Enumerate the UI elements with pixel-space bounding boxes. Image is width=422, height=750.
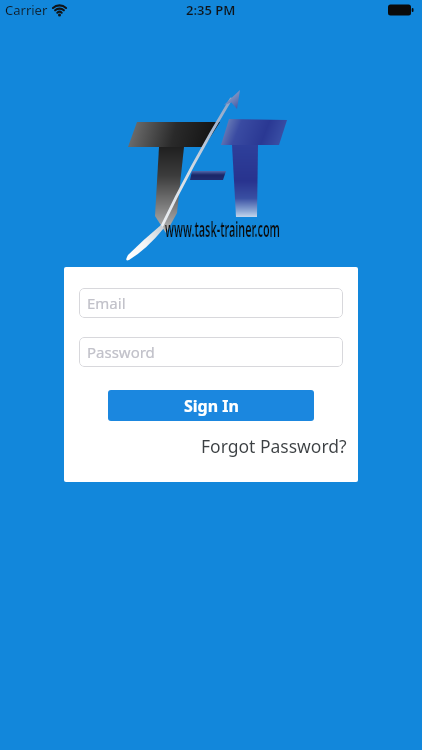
button[interactable]: Password (79, 337, 343, 367)
staticText: Carrier (5, 1, 48, 19)
staticText: Email (87, 293, 126, 313)
button[interactable]: Forgot Password? (201, 434, 347, 458)
button[interactable]: Email (79, 288, 343, 318)
staticText: Password (87, 342, 155, 362)
staticText: Forgot Password? (201, 434, 347, 458)
staticText: 2:35 PM (186, 1, 236, 19)
staticText: www.task-trainer.com (165, 213, 280, 243)
button[interactable]: Sign In (108, 390, 314, 421)
staticText: Sign In (184, 395, 239, 417)
